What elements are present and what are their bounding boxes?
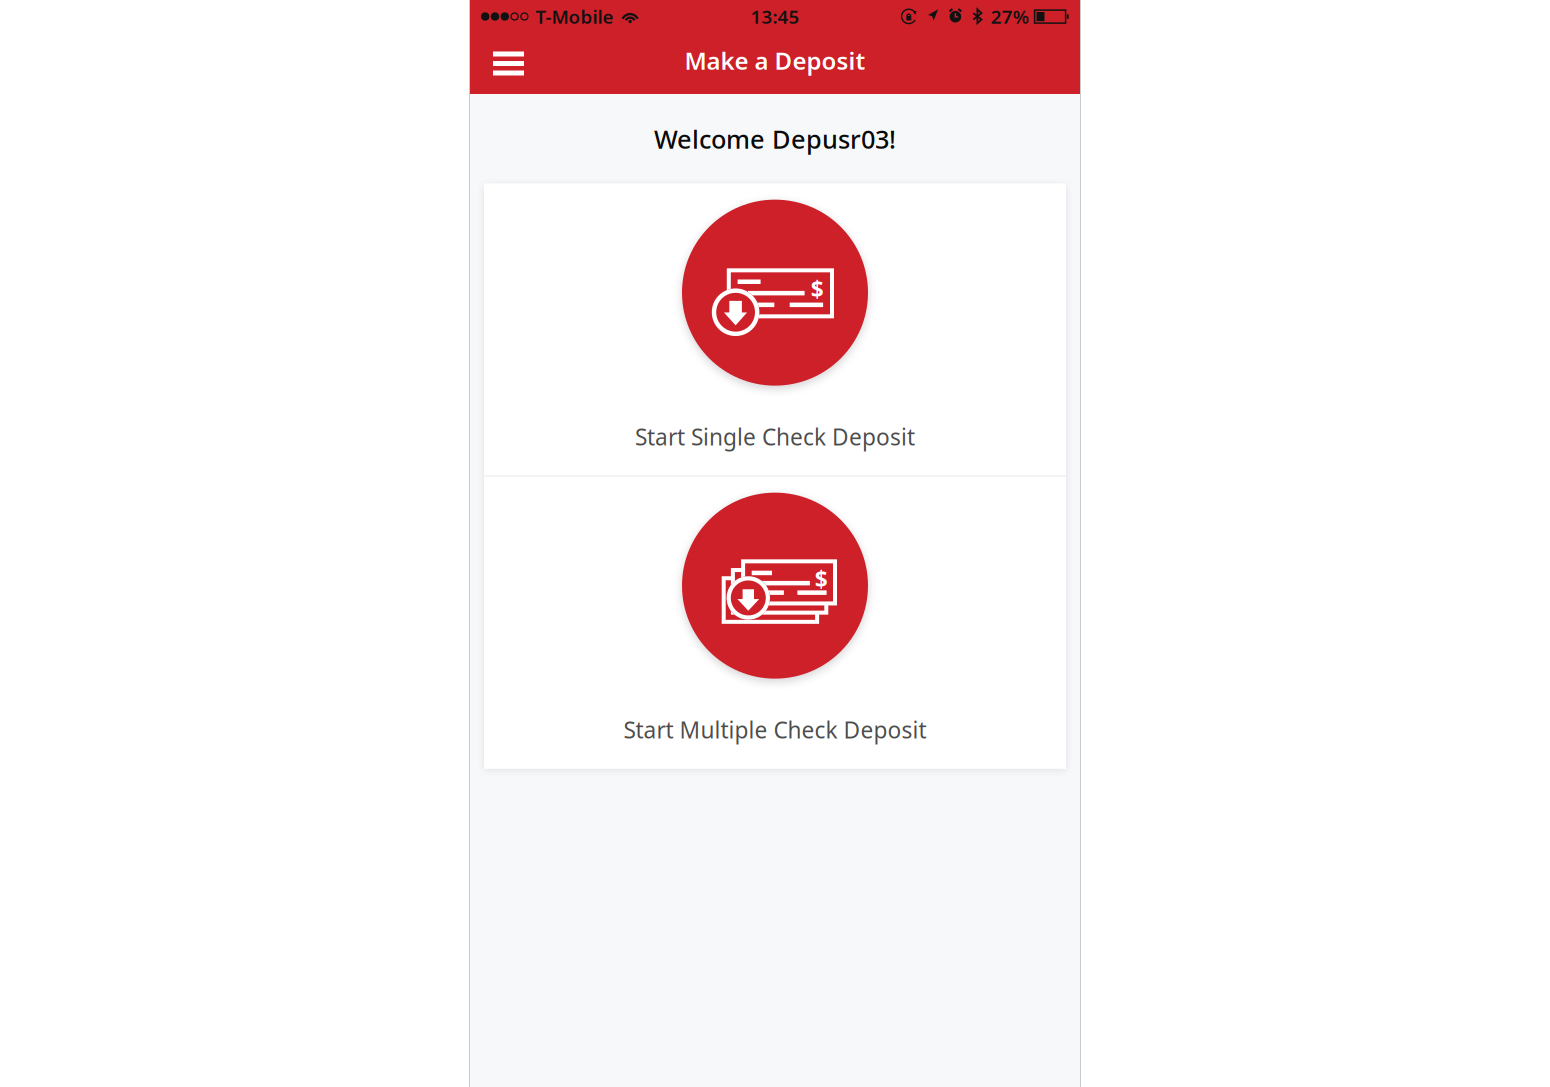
staticText: T-Mobile (536, 4, 614, 29)
staticText: 27% (991, 4, 1029, 29)
staticText: Make a Deposit (684, 45, 865, 76)
staticText: Start Single Check Deposit (635, 422, 915, 452)
staticText: Welcome Depusr03! (654, 122, 896, 156)
button[interactable]: $ (484, 184, 1066, 476)
staticText: $ (811, 274, 824, 304)
staticText: $ (815, 564, 828, 594)
button[interactable]: Menu (481, 33, 536, 94)
staticText: Start Multiple Check Deposit (623, 715, 926, 745)
staticText: 13:45 (750, 4, 799, 29)
button[interactable]: $ (484, 477, 1066, 769)
